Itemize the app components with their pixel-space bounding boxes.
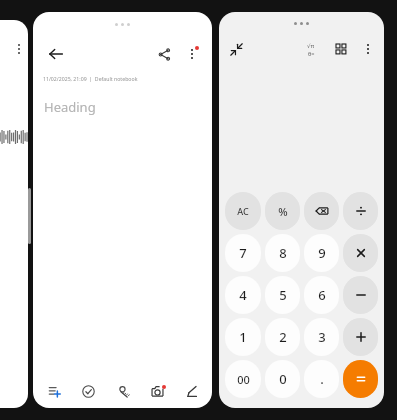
button[interactable]: Back (41, 39, 71, 69)
button[interactable]: More options (178, 40, 206, 68)
button[interactable]: 6 (304, 276, 339, 314)
staticText: 8 (279, 244, 287, 262)
staticText: 2 (279, 328, 287, 346)
button[interactable]: 8 (265, 234, 300, 272)
button[interactable]: 5 (265, 276, 300, 314)
button[interactable]: . (304, 360, 339, 398)
staticText: 00 (237, 372, 250, 387)
staticText: 7 (239, 244, 247, 262)
button[interactable]: Insert (41, 378, 67, 404)
button[interactable]: 4 (225, 276, 261, 314)
button[interactable]: Divide (343, 192, 378, 230)
button[interactable]: More options (357, 38, 379, 60)
button[interactable]: Voice recording (110, 378, 136, 404)
button[interactable]: Plus (343, 318, 378, 356)
button[interactable]: Backspace (304, 192, 339, 230)
button[interactable]: % (265, 192, 300, 230)
staticText: AC (237, 205, 249, 217)
button[interactable]: 2 (265, 318, 300, 356)
staticText: 3 (318, 328, 326, 346)
staticText: Heading (44, 98, 96, 116)
button[interactable]: 1 (225, 318, 261, 356)
button[interactable]: 9 (304, 234, 339, 272)
button[interactable] (0, 20, 28, 408)
button[interactable]: 7 (225, 234, 261, 272)
staticText: 5 (279, 286, 287, 304)
staticText: 11/02/2025, 21:09 | Default notebook (43, 75, 138, 82)
staticText: 4 (239, 286, 247, 304)
staticText: 9 (318, 244, 326, 262)
staticText: . (320, 370, 324, 388)
button[interactable]: Share (150, 40, 178, 68)
staticText: √π (307, 42, 315, 49)
button[interactable]: Window controls (115, 23, 130, 26)
button[interactable]: 0 (265, 360, 300, 398)
staticText: θ= (308, 50, 315, 57)
button[interactable]: Converter (329, 37, 353, 61)
button[interactable]: Window controls (294, 22, 309, 25)
button[interactable]: AC (225, 192, 261, 230)
button[interactable]: Scientific calculator (299, 37, 323, 61)
staticText: 1 (239, 328, 247, 346)
staticText: 6 (318, 286, 326, 304)
staticText: 0 (279, 370, 287, 388)
button[interactable]: 00 (225, 360, 261, 398)
button[interactable]: Minus (343, 276, 378, 314)
button[interactable]: 3 (304, 318, 339, 356)
button[interactable]: Draw (178, 378, 204, 404)
button[interactable]: Camera (144, 378, 170, 404)
button[interactable]: Equals (343, 360, 378, 398)
button[interactable]: Checklist (75, 378, 101, 404)
button[interactable]: Multiply (343, 234, 378, 272)
button[interactable]: Exit full screen (223, 36, 249, 62)
staticText: % (278, 204, 288, 219)
